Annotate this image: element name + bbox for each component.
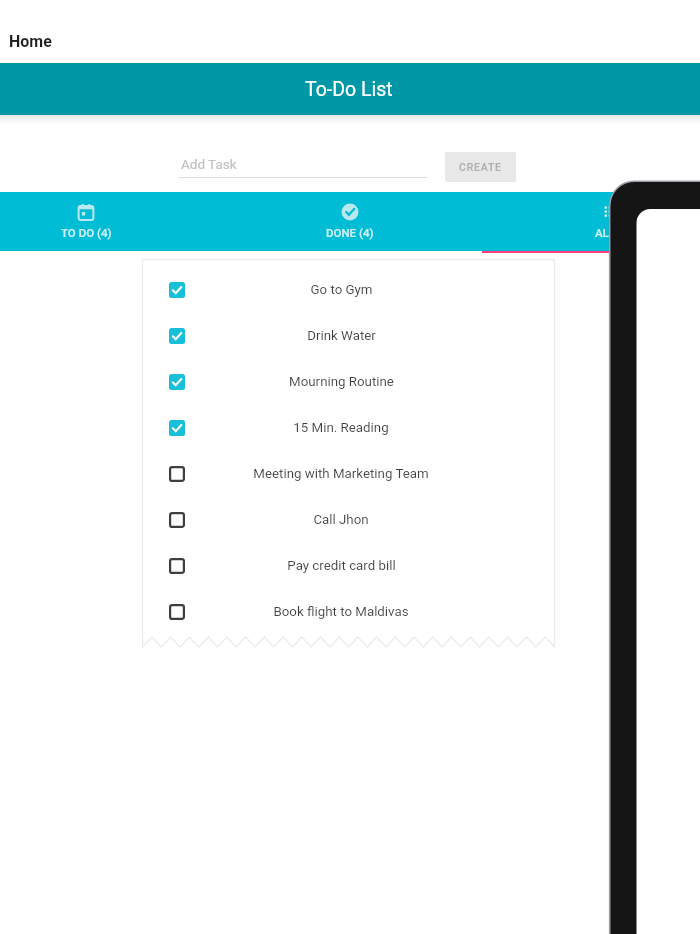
staticText: Pay credit card bill — [287, 558, 396, 574]
staticText: Drink Water — [307, 328, 376, 344]
button[interactable]: Call Jhon — [142, 497, 555, 543]
button[interactable]: Book flight to Maldivas — [142, 589, 555, 635]
staticText: Mourning Routine — [289, 374, 394, 390]
staticText: TO DO (4) — [61, 226, 112, 239]
button[interactable]: Drink Water — [142, 313, 555, 359]
button[interactable]: Mourning Routine — [142, 359, 555, 405]
staticText: ALL (8) — [595, 226, 633, 239]
button[interactable]: All — [482, 192, 700, 251]
button[interactable]: Done — [218, 192, 482, 251]
staticText: Add Task — [181, 156, 237, 172]
button[interactable]: 15 Min. Reading — [142, 405, 555, 451]
staticText: 15 Min. Reading — [293, 420, 389, 436]
other: All — [606, 204, 622, 220]
button[interactable]: CREATE — [445, 152, 516, 182]
staticText: Go to Gym — [310, 282, 373, 298]
staticText: Book flight to Maldivas — [273, 604, 409, 620]
staticText: Home — [9, 32, 52, 51]
button[interactable]: Go to Gym — [142, 267, 555, 313]
staticText: Meeting with Marketing Team — [253, 466, 429, 482]
staticText: To-Do List — [305, 78, 393, 101]
staticText: Call Jhon — [313, 512, 369, 528]
button[interactable]: Meeting with Marketing Team — [142, 451, 555, 497]
button[interactable]: Pay credit card bill — [142, 543, 555, 589]
other: To do — [78, 204, 94, 220]
staticText: CREATE — [459, 161, 502, 173]
other: Done — [342, 204, 358, 220]
staticText: DONE (4) — [326, 226, 374, 239]
button[interactable]: To do — [0, 192, 218, 251]
